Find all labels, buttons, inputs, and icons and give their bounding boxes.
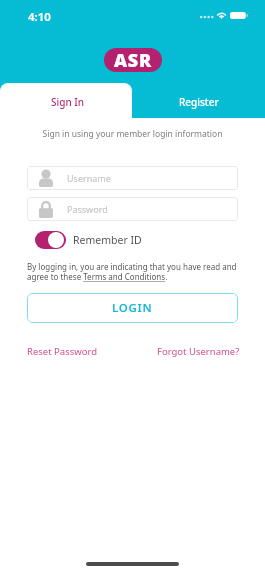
button[interactable]: Forgot Username? (157, 345, 240, 358)
other: Wi-Fi (216, 11, 227, 19)
staticText: Password (67, 203, 108, 215)
button[interactable]: Sign In (0, 83, 132, 118)
staticText: ASR (114, 48, 153, 72)
staticText: Register (179, 95, 219, 109)
staticText: By logging in, you are indicating that y… (27, 261, 237, 283)
button[interactable]: Register (132, 83, 265, 118)
staticText: LOGIN (112, 300, 153, 316)
button[interactable]: LOGIN (27, 293, 238, 323)
staticText: Sign In (51, 95, 85, 109)
staticText: 4:10 (28, 9, 51, 25)
other: Cellular signal (200, 15, 213, 19)
button[interactable]: ASR logo (104, 48, 162, 72)
staticText: Remember ID (73, 233, 142, 247)
staticText: Sign in using your member login informat… (0, 128, 265, 140)
button[interactable]: Username (27, 166, 238, 190)
button[interactable]: Remember ID (35, 231, 142, 249)
staticText: Username (67, 172, 111, 184)
other: Battery (230, 12, 248, 19)
button[interactable]: Password (27, 197, 238, 221)
button[interactable]: Reset Password (27, 345, 98, 358)
